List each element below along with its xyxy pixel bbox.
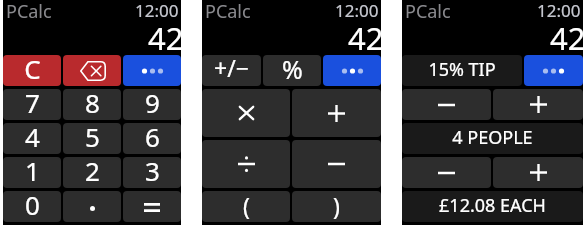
staticText: PCalc bbox=[6, 0, 52, 24]
staticText: 1 bbox=[25, 157, 40, 184]
staticText: 3 bbox=[145, 157, 160, 184]
button[interactable]: ) bbox=[292, 191, 381, 222]
button[interactable]: 3 bbox=[123, 157, 181, 188]
staticText: PCalc bbox=[205, 0, 251, 24]
button[interactable]: Decrease tip bbox=[402, 89, 491, 120]
staticText: 0 bbox=[25, 191, 40, 218]
button[interactable]: 1 bbox=[3, 157, 61, 188]
staticText: +/− bbox=[214, 55, 249, 83]
button[interactable]: Equals bbox=[123, 191, 181, 222]
button[interactable]: Divide bbox=[202, 140, 290, 188]
button[interactable]: 8 bbox=[63, 89, 121, 120]
staticText: 5 bbox=[85, 123, 100, 150]
staticText: 42 bbox=[348, 17, 384, 59]
button[interactable]: 0 bbox=[3, 191, 61, 222]
button[interactable]: Add bbox=[292, 89, 381, 137]
staticText: 4 PEOPLE bbox=[452, 125, 533, 150]
button[interactable]: 15% TIP bbox=[402, 55, 522, 86]
staticText: 8 bbox=[85, 89, 100, 116]
staticText: PCalc bbox=[405, 0, 451, 24]
staticText: ( bbox=[243, 191, 250, 221]
button[interactable]: 5 bbox=[63, 123, 121, 154]
button[interactable]: 4 bbox=[3, 123, 61, 154]
staticText: 12:00 bbox=[135, 0, 179, 22]
button[interactable]: Subtract bbox=[292, 140, 381, 188]
staticText: 6 bbox=[145, 123, 160, 150]
button[interactable]: Increase tip bbox=[493, 89, 583, 120]
button[interactable]: More bbox=[524, 55, 583, 86]
button[interactable]: % bbox=[263, 55, 321, 86]
button[interactable]: Decimal point bbox=[63, 191, 121, 222]
staticText: 42 bbox=[550, 17, 583, 59]
staticText: % bbox=[282, 55, 303, 83]
button[interactable]: Clear bbox=[3, 55, 61, 86]
button[interactable]: More bbox=[123, 55, 181, 86]
button[interactable]: More bbox=[323, 55, 381, 86]
staticText: 12:00 bbox=[537, 0, 581, 22]
button[interactable]: +/− bbox=[202, 55, 261, 86]
staticText: 4 bbox=[25, 123, 40, 150]
button[interactable]: 6 bbox=[123, 123, 181, 154]
button[interactable]: Backspace bbox=[63, 55, 121, 86]
staticText: 42 bbox=[148, 17, 184, 59]
button[interactable]: 9 bbox=[123, 89, 181, 120]
staticText: 15% TIP bbox=[428, 57, 496, 82]
button[interactable]: Multiply bbox=[202, 89, 290, 137]
staticText: ) bbox=[333, 191, 340, 221]
button[interactable]: 2 bbox=[63, 157, 121, 188]
staticText: C bbox=[24, 55, 41, 82]
button[interactable]: ( bbox=[202, 191, 290, 222]
button[interactable]: More people bbox=[493, 157, 583, 188]
button[interactable]: £12.08 EACH bbox=[402, 191, 583, 222]
button[interactable]: 4 PEOPLE bbox=[402, 123, 583, 154]
staticText: 12:00 bbox=[335, 0, 379, 22]
staticText: 2 bbox=[85, 157, 100, 184]
staticText: £12.08 EACH bbox=[439, 193, 546, 218]
staticText: 7 bbox=[25, 89, 40, 116]
staticText: 9 bbox=[145, 89, 160, 116]
button[interactable]: 7 bbox=[3, 89, 61, 120]
button[interactable]: Fewer people bbox=[402, 157, 491, 188]
